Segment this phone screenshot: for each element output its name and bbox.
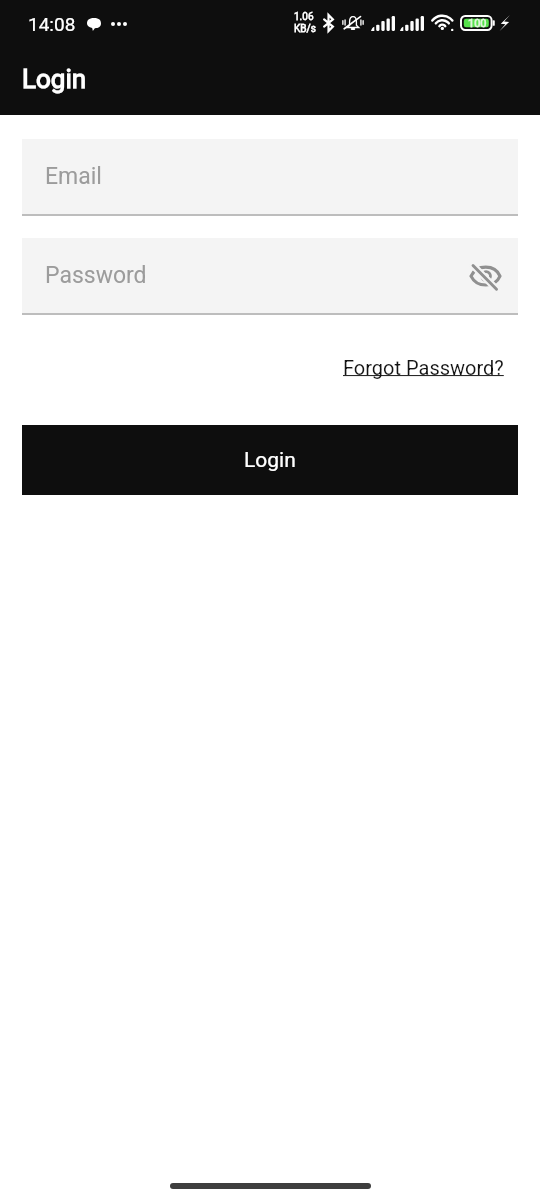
- button[interactable]: Forgot Password?: [333, 346, 514, 389]
- button[interactable]: Password: [22, 238, 518, 315]
- staticText: 14:08: [28, 13, 76, 35]
- button[interactable]: Email: [22, 139, 518, 216]
- staticText: Login: [22, 64, 87, 94]
- staticText: Login: [244, 448, 296, 473]
- staticText: Forgot Password?: [343, 356, 504, 379]
- staticText: 1.06: [294, 11, 314, 23]
- button[interactable]: Toggle password visibility: [461, 254, 509, 302]
- staticText: KB/s: [294, 23, 316, 35]
- staticText: Email: [45, 163, 102, 190]
- button[interactable]: Login: [22, 425, 518, 495]
- staticText: Password: [45, 262, 147, 289]
- staticText: 100: [468, 17, 487, 30]
